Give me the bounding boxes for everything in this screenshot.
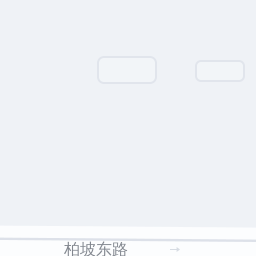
button[interactable]: Map label: [98, 57, 156, 83]
button[interactable]: Map label: [196, 61, 244, 81]
staticText: 柏坡东路: [64, 239, 128, 256]
